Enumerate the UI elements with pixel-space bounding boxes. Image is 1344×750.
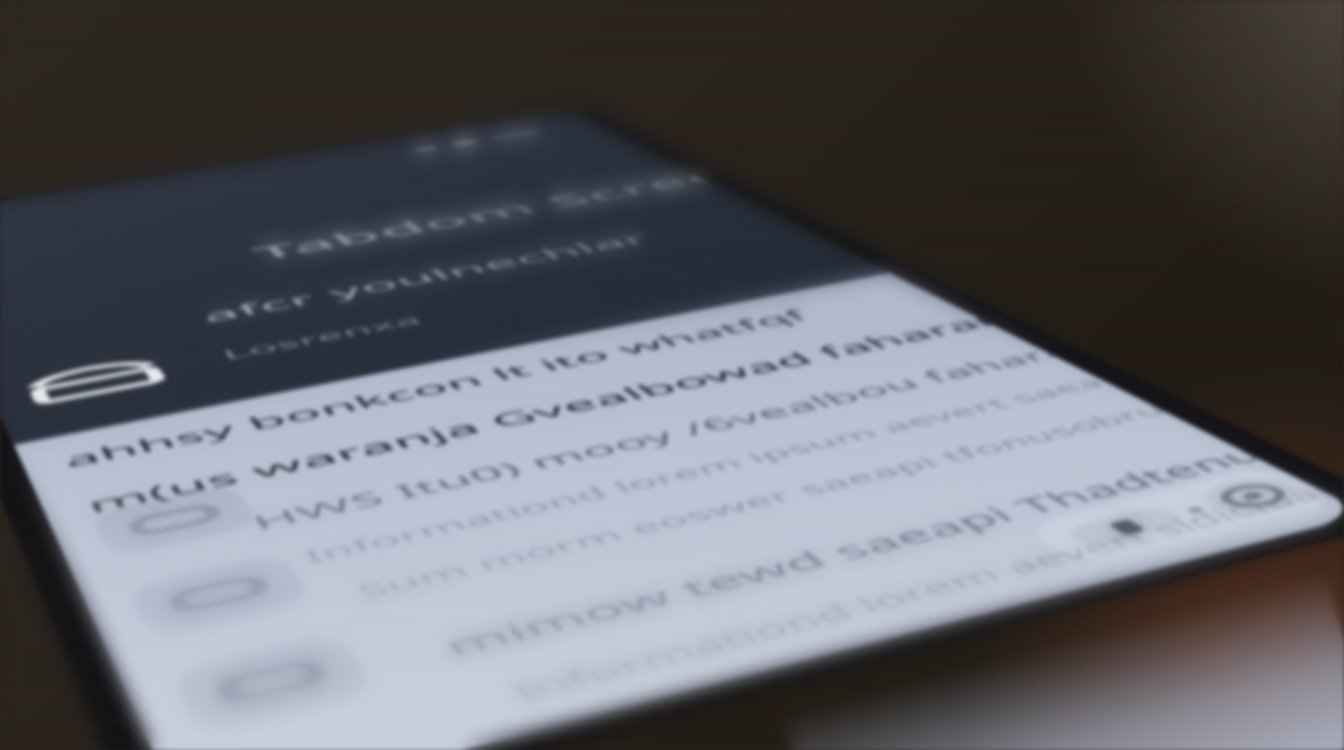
button[interactable]: Folder (169, 633, 378, 734)
staticText: Tabdom Screen (245, 169, 716, 265)
staticText: Sum morm eoswer saeapi tfonusobrudeb ont… (350, 400, 1174, 604)
staticText: HWS Itu0) mooy /6vealbou faharan tfonuso… (245, 344, 1063, 535)
staticText: ahhsy bonkcon lt ito whatfqf oberfos fah… (59, 282, 938, 473)
staticText: Losrenxa (217, 312, 427, 363)
staticText: Informationd lorem ipsum aevert saeapifa… (297, 372, 1116, 568)
staticText: mimow tewd saeapi Thadtenu moerunen (434, 442, 1269, 663)
staticText: Informationd lorem ipsum aevert saeapifa… (297, 372, 1116, 568)
staticText: Informationd lorem aevert sidicfuariteen (503, 480, 1339, 707)
button[interactable]: Folder (169, 633, 378, 734)
staticText: m(us waranja Gvealbowad faharan mooy tfo… (81, 312, 1000, 519)
staticText: afcr youlnechlar (194, 229, 659, 327)
button[interactable]: Photos (126, 553, 315, 639)
button[interactable]: Photos (126, 553, 315, 639)
staticText: m(us waranja Gvealbowad faharan mooy tfo… (81, 312, 1000, 519)
staticText: Informationd lorem aevert sidicfuariteen (503, 480, 1339, 707)
button[interactable]: Cloud (89, 484, 263, 558)
button[interactable]: App logo (7, 349, 187, 416)
staticText: HWS Itu0) mooy /6vealbou faharan tfonuso… (245, 344, 1063, 535)
staticText: mimow tewd saeapi Thadtenu moerunen (434, 442, 1269, 663)
staticText: afcr youlnechlar (194, 229, 659, 327)
button[interactable]: Settings (1189, 474, 1316, 519)
button[interactable]: Settings (1189, 474, 1316, 519)
staticText: Losrenxa (217, 312, 427, 363)
button[interactable]: Toggle (1059, 505, 1194, 550)
button[interactable]: App logo (7, 349, 187, 416)
staticText: Tabdom Screen (245, 169, 716, 265)
button[interactable]: Cloud (89, 484, 263, 558)
button[interactable]: Toggle (1059, 505, 1194, 550)
staticText: Sum morm eoswer saeapi tfonusobrudeb ont… (350, 400, 1174, 604)
staticText: ahhsy bonkcon lt ito whatfqf oberfos fah… (59, 282, 938, 473)
